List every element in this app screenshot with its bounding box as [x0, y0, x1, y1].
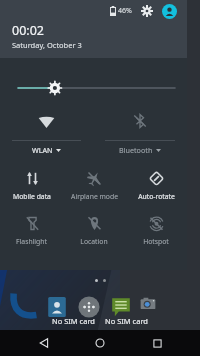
staticText: 00:02 — [12, 22, 44, 39]
button[interactable]: Back — [31, 330, 57, 356]
button[interactable]: Location — [63, 213, 125, 246]
button[interactable]: Recent apps — [144, 330, 170, 356]
button[interactable]: Flashlight — [0, 213, 63, 246]
button[interactable]: Airplane mode — [63, 168, 125, 201]
button[interactable]: WLAN — [0, 108, 93, 155]
staticText: Saturday, October 3 — [12, 40, 82, 50]
button[interactable]: Auto-rotate — [125, 168, 187, 201]
staticText: 46% — [118, 6, 132, 16]
button[interactable]: Bluetooth — [93, 108, 187, 155]
button[interactable]: User — [162, 4, 177, 19]
staticText: Flashlight — [16, 237, 47, 246]
staticText: WLAN — [32, 145, 53, 155]
staticText: Bluetooth — [119, 145, 153, 155]
staticText: Auto-rotate — [138, 192, 175, 201]
staticText: Mobile data — [13, 192, 51, 201]
staticText: Location — [80, 237, 108, 246]
button[interactable]: Apps — [76, 294, 102, 320]
staticText: Airplane mode — [71, 192, 118, 201]
button[interactable]: Mobile data — [0, 168, 63, 201]
button[interactable]: Contacts — [44, 294, 70, 320]
staticText: No SIM card — [52, 316, 95, 326]
button[interactable]: Hotspot — [125, 213, 187, 246]
staticText: Hotspot — [143, 237, 169, 246]
button[interactable]: Brightness — [0, 79, 187, 97]
button[interactable]: Settings — [140, 4, 154, 18]
button[interactable]: Home — [87, 330, 113, 356]
button[interactable]: Camera — [140, 294, 156, 320]
staticText: No SIM card — [105, 316, 148, 326]
button[interactable]: Messaging — [108, 294, 134, 320]
